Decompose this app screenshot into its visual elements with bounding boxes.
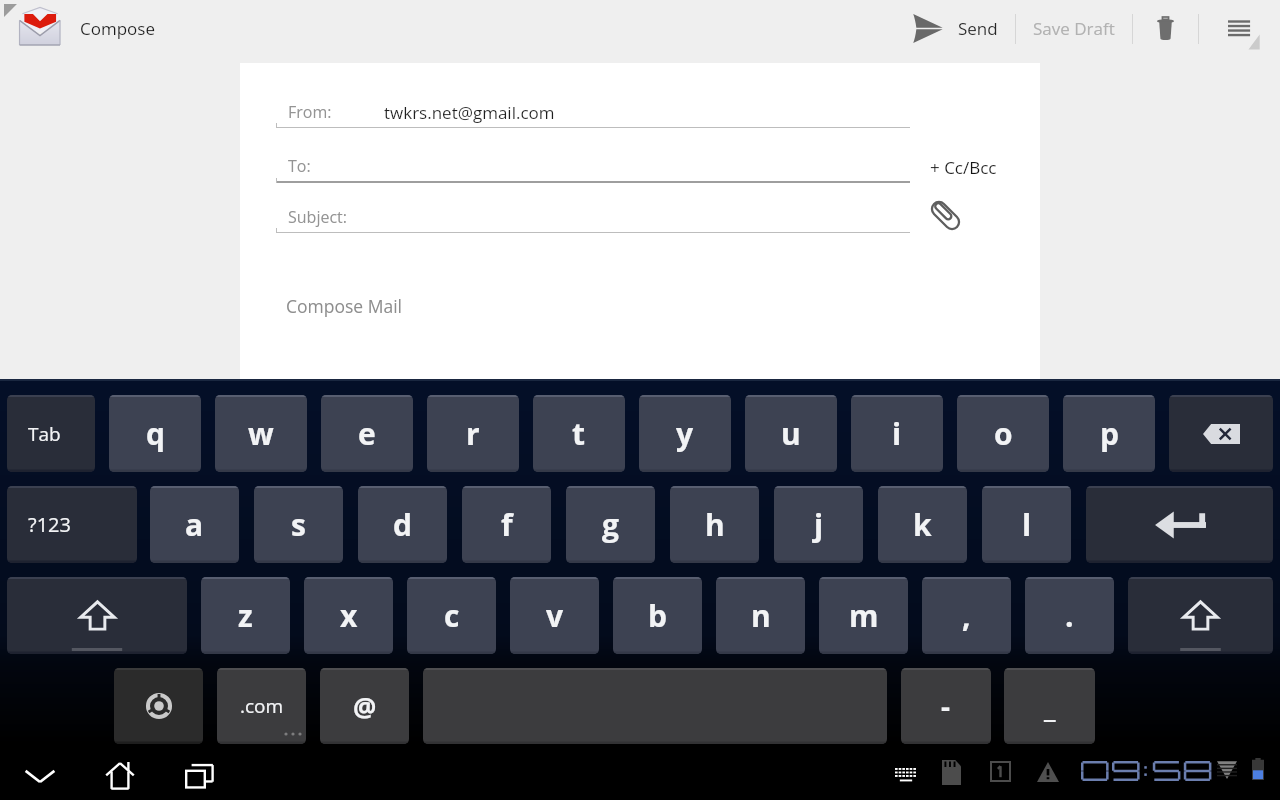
staticText: . bbox=[1065, 595, 1074, 636]
staticText: To: bbox=[288, 155, 311, 177]
button[interactable]: g bbox=[566, 486, 655, 563]
staticText: _ bbox=[1044, 687, 1056, 725]
staticText: y bbox=[676, 413, 694, 454]
button[interactable]: Compose bbox=[0, 0, 165, 57]
button[interactable]: To: bbox=[276, 151, 910, 188]
button[interactable]: Enter bbox=[1086, 486, 1273, 563]
button[interactable]: Discard bbox=[1133, 0, 1198, 57]
staticText: h bbox=[705, 504, 725, 545]
button[interactable]: w bbox=[215, 395, 307, 472]
staticText: f bbox=[501, 504, 513, 545]
staticText: b bbox=[648, 595, 667, 636]
button[interactable]: r bbox=[427, 395, 519, 472]
staticText: s bbox=[291, 504, 306, 545]
button[interactable]: , bbox=[922, 577, 1011, 654]
button[interactable]: + Cc/Bcc bbox=[924, 150, 1003, 185]
button[interactable]: u bbox=[745, 395, 837, 472]
staticText: Compose Mail bbox=[286, 294, 402, 318]
button[interactable]: - bbox=[901, 668, 991, 744]
button[interactable]: . bbox=[1025, 577, 1114, 654]
button[interactable]: _ bbox=[1004, 668, 1095, 744]
staticText: o bbox=[994, 413, 1013, 454]
button[interactable]: s bbox=[254, 486, 343, 563]
staticText: q bbox=[146, 413, 165, 454]
button[interactable]: z bbox=[201, 577, 290, 654]
button[interactable]: j bbox=[774, 486, 863, 563]
button[interactable]: Save Draft bbox=[1016, 0, 1132, 57]
staticText: w bbox=[248, 413, 274, 454]
staticText: Compose bbox=[80, 17, 155, 40]
button[interactable]: Subject: bbox=[276, 202, 910, 238]
button[interactable]: e bbox=[321, 395, 413, 472]
staticText: u bbox=[781, 413, 801, 454]
button[interactable]: i bbox=[851, 395, 943, 472]
staticText: z bbox=[238, 595, 253, 636]
staticText: c bbox=[444, 595, 460, 636]
button[interactable]: Attach file bbox=[926, 197, 965, 234]
staticText: Subject: bbox=[288, 206, 347, 228]
button[interactable]: p bbox=[1063, 395, 1155, 472]
staticText: v bbox=[546, 595, 564, 636]
button[interactable]: More options bbox=[1199, 0, 1280, 57]
staticText: j bbox=[814, 504, 824, 545]
staticText: p bbox=[1100, 413, 1119, 454]
staticText: ?123 bbox=[28, 511, 71, 538]
button[interactable]: Back bbox=[14, 750, 66, 800]
button[interactable]: Home bbox=[94, 750, 146, 800]
staticText: n bbox=[751, 595, 771, 636]
button[interactable]: Send bbox=[898, 0, 1015, 57]
staticText: + Cc/Bcc bbox=[930, 156, 997, 179]
staticText: r bbox=[466, 413, 480, 454]
staticText: l bbox=[1022, 504, 1032, 545]
button[interactable]: d bbox=[358, 486, 447, 563]
staticText: a bbox=[185, 504, 204, 545]
button[interactable]: Backspace bbox=[1169, 395, 1273, 472]
staticText: Tab bbox=[28, 421, 61, 447]
button[interactable]: v bbox=[510, 577, 599, 654]
button[interactable]: .com bbox=[217, 668, 306, 744]
staticText: e bbox=[358, 413, 376, 454]
button[interactable]: From: bbox=[276, 97, 910, 133]
button[interactable]: c bbox=[407, 577, 496, 654]
button[interactable]: y bbox=[639, 395, 731, 472]
button[interactable]: n bbox=[716, 577, 805, 654]
button[interactable]: Recent apps bbox=[174, 750, 226, 800]
button[interactable]: a bbox=[150, 486, 239, 563]
staticText: t bbox=[572, 413, 586, 454]
button[interactable]: q bbox=[109, 395, 201, 472]
button[interactable]: Shift bbox=[1128, 577, 1273, 654]
staticText: d bbox=[393, 504, 412, 545]
staticText: .com bbox=[240, 693, 284, 719]
button[interactable]: ?123 bbox=[7, 486, 137, 563]
staticText: @ bbox=[353, 689, 377, 724]
staticText: , bbox=[962, 595, 971, 636]
button[interactable]: t bbox=[533, 395, 625, 472]
button[interactable] bbox=[423, 668, 887, 744]
staticText: i bbox=[892, 413, 902, 454]
button[interactable]: Choose input method bbox=[884, 753, 928, 797]
staticText: x bbox=[340, 595, 358, 636]
button[interactable]: @ bbox=[320, 668, 409, 744]
button[interactable]: Tab bbox=[7, 395, 95, 472]
staticText: Save Draft bbox=[1033, 17, 1115, 40]
button[interactable]: l bbox=[982, 486, 1071, 563]
staticText: g bbox=[602, 504, 619, 545]
button[interactable]: Input settings bbox=[114, 668, 203, 744]
button[interactable]: Compose Mail bbox=[276, 273, 910, 363]
staticText: - bbox=[941, 687, 951, 725]
staticText: From: bbox=[288, 101, 332, 123]
button[interactable]: h bbox=[670, 486, 759, 563]
button[interactable]: b bbox=[613, 577, 702, 654]
staticText: twkrs.net@gmail.com bbox=[384, 101, 555, 124]
button[interactable]: f bbox=[462, 486, 551, 563]
button[interactable]: o bbox=[957, 395, 1049, 472]
staticText: k bbox=[913, 504, 932, 545]
button[interactable]: m bbox=[819, 577, 908, 654]
button[interactable]: x bbox=[304, 577, 393, 654]
button[interactable]: k bbox=[878, 486, 967, 563]
button[interactable]: Shift bbox=[7, 577, 187, 654]
staticText: m bbox=[849, 595, 879, 636]
staticText: Send bbox=[958, 17, 998, 40]
